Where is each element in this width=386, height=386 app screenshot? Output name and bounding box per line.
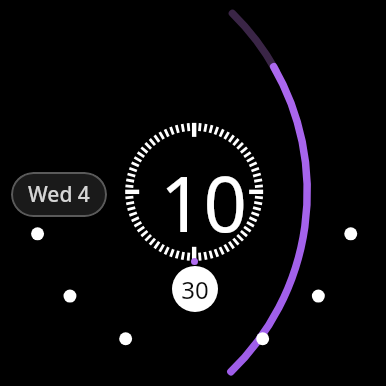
button[interactable]: Hours dial (0, 0, 386, 386)
button[interactable]: Steps dots (0, 0, 386, 386)
staticText: Wed 4 (28, 180, 90, 209)
button[interactable]: Wed 4 (11, 172, 107, 217)
button[interactable]: 30 (172, 266, 218, 312)
staticText: 30 (181, 273, 209, 306)
staticText: 10 (160, 151, 247, 255)
button[interactable]: Activity progress (0, 0, 386, 386)
